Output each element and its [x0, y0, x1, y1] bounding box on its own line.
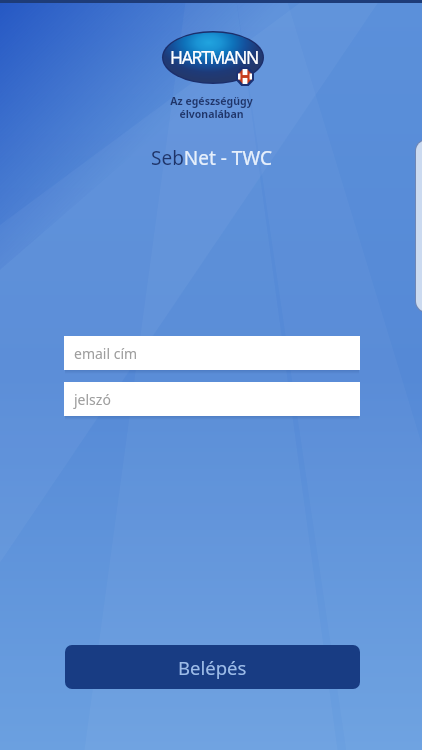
staticText: Az egészségügy élvonalában	[170, 94, 253, 121]
button[interactable]: email cím	[64, 336, 360, 370]
staticText: SebNet - TWC	[151, 145, 272, 171]
staticText: email cím	[74, 344, 138, 363]
button[interactable]: jelszó	[64, 382, 360, 416]
staticText: Belépés	[178, 655, 247, 680]
staticText: jelszó	[74, 390, 111, 409]
staticText: HARTMANN	[170, 45, 259, 69]
button[interactable]: Belépés	[65, 645, 360, 689]
